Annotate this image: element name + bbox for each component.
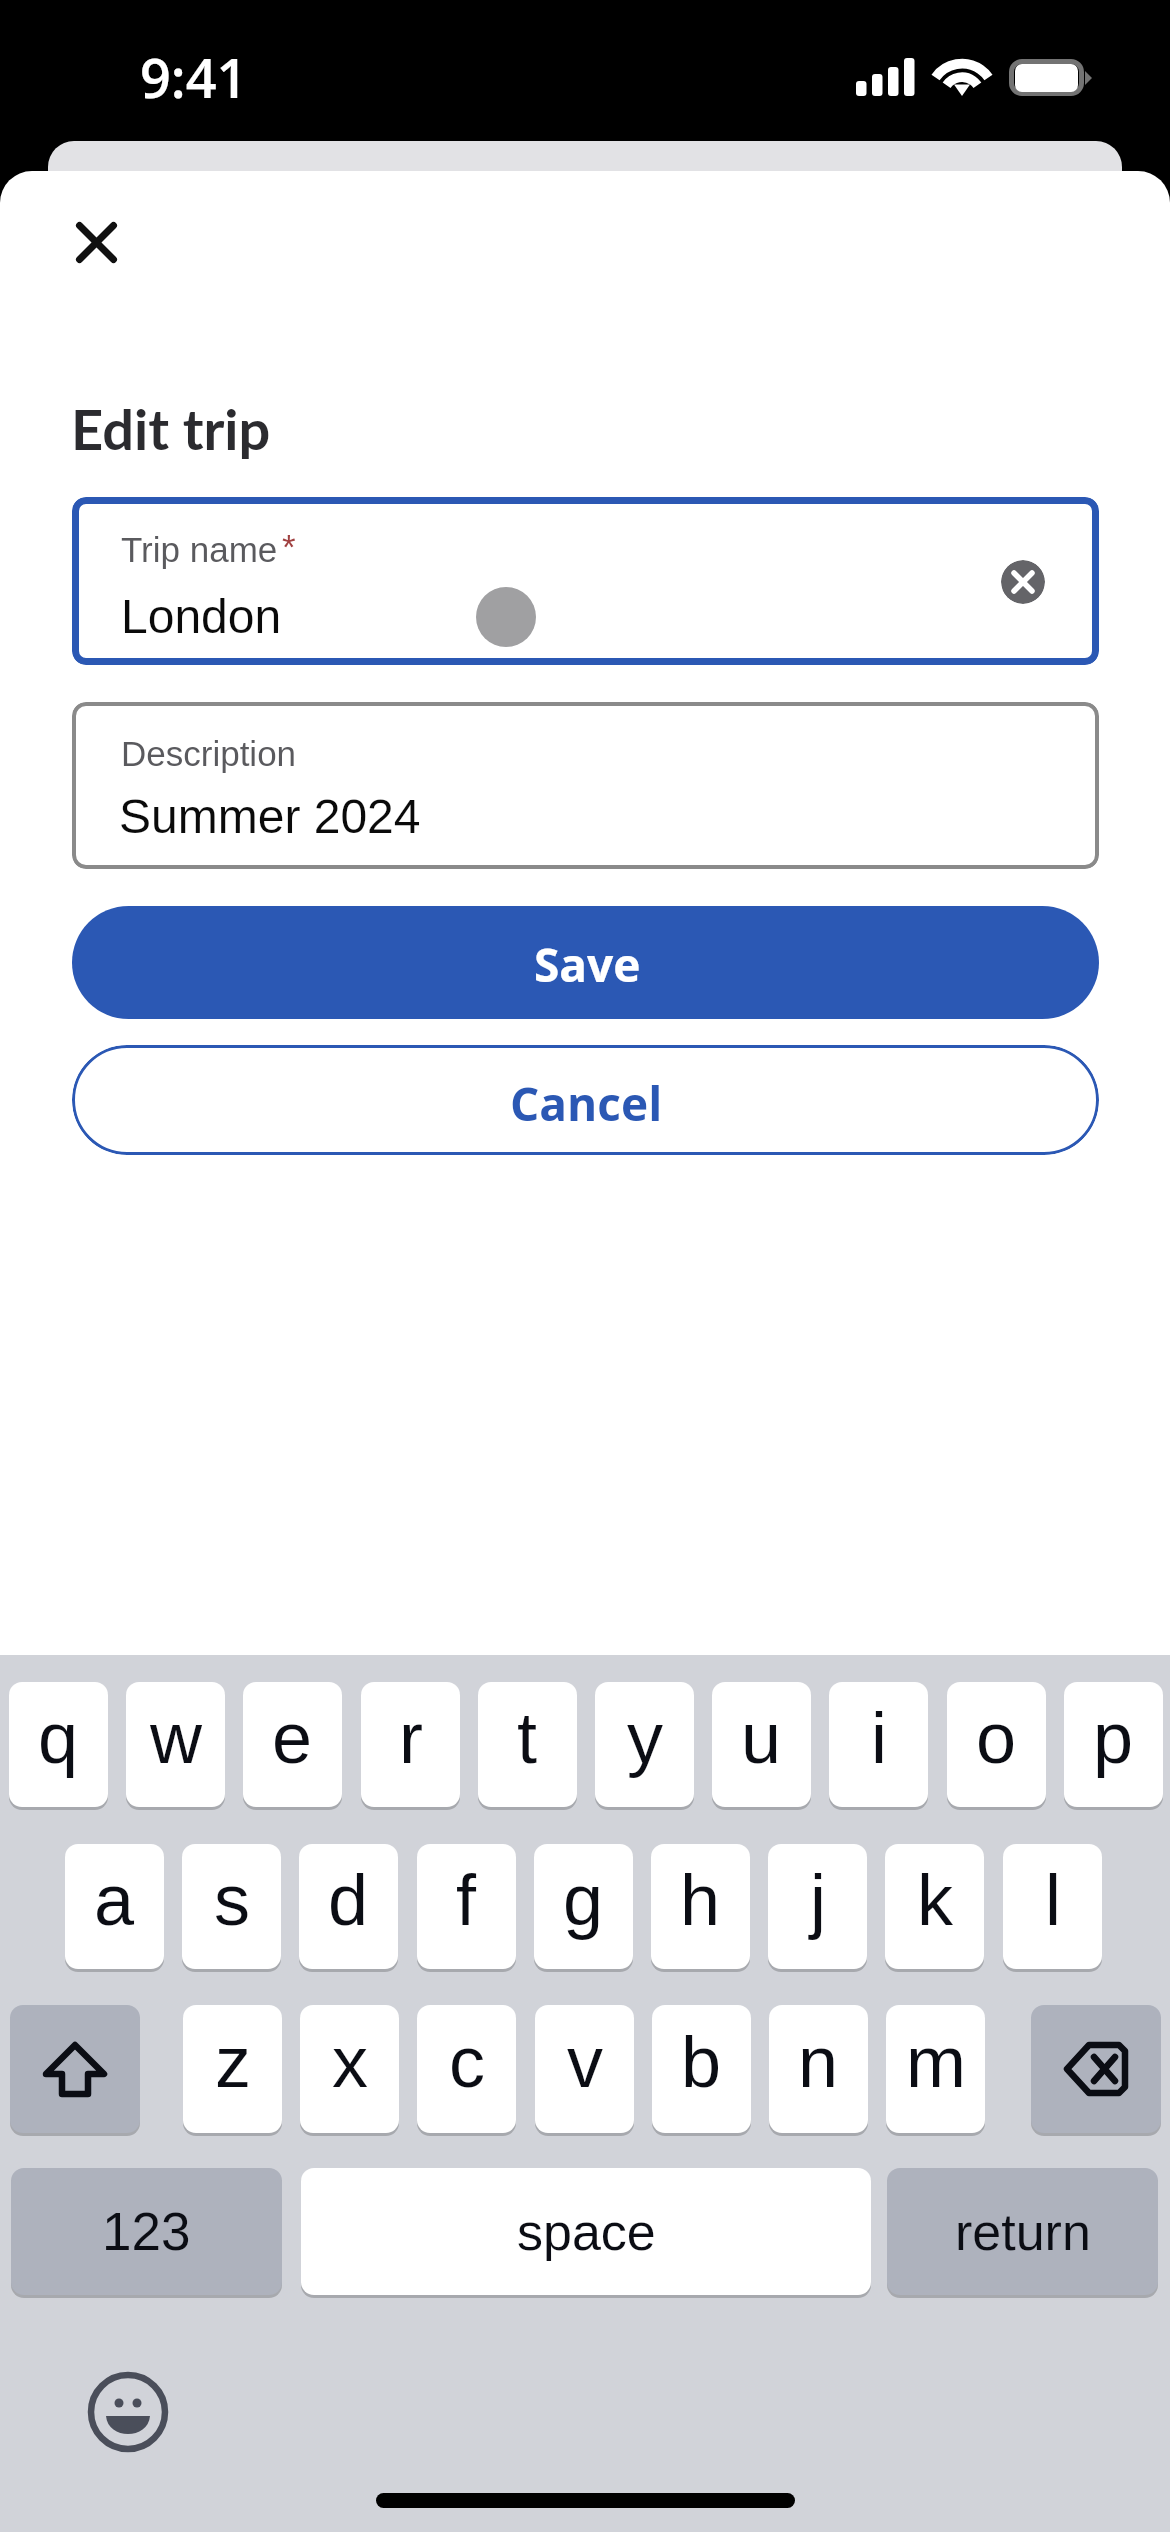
staticText: Trip name (121, 530, 278, 569)
staticText: u (741, 1698, 782, 1778)
staticText: x (332, 2022, 368, 2102)
button[interactable]: n (769, 2005, 868, 2133)
button[interactable]: q (9, 1682, 108, 1807)
staticText: c (449, 2022, 485, 2102)
button[interactable]: c (417, 2005, 516, 2133)
staticText: a (94, 1860, 135, 1940)
button[interactable]: i (829, 1682, 928, 1807)
staticText: b (681, 2022, 722, 2102)
button[interactable]: Backspace (1031, 2005, 1161, 2133)
staticText: d (328, 1860, 369, 1940)
button[interactable]: g (534, 1844, 633, 1969)
button[interactable]: h (651, 1844, 750, 1969)
button[interactable]: k (885, 1844, 984, 1969)
staticText: g (563, 1860, 604, 1940)
button[interactable]: Cancel (72, 1045, 1099, 1155)
staticText: i (871, 1698, 887, 1778)
staticText: 123 (102, 2202, 191, 2261)
staticText: f (456, 1860, 477, 1940)
button[interactable]: s (182, 1844, 281, 1969)
button[interactable]: p (1064, 1682, 1163, 1807)
button[interactable]: Clear text (1001, 560, 1045, 604)
staticText: y (627, 1698, 663, 1778)
button[interactable]: v (535, 2005, 634, 2133)
button[interactable]: y (595, 1682, 694, 1807)
button[interactable]: u (712, 1682, 811, 1807)
staticText: 9:41 (140, 40, 248, 114)
button[interactable]: e (243, 1682, 342, 1807)
staticText: Cancel (510, 1072, 663, 1135)
button[interactable]: o (947, 1682, 1046, 1807)
staticText: e (272, 1698, 313, 1778)
button[interactable]: Close (56, 202, 136, 282)
staticText: l (1045, 1860, 1061, 1940)
staticText: v (567, 2022, 603, 2102)
button[interactable]: a (65, 1844, 164, 1969)
staticText: s (214, 1860, 250, 1940)
staticText: Edit trip (71, 395, 271, 462)
staticText: m (906, 2022, 966, 2102)
button[interactable]: t (478, 1682, 577, 1807)
staticText: London (121, 590, 282, 644)
button[interactable]: j (768, 1844, 867, 1969)
button[interactable]: Trip name (72, 497, 1099, 665)
button[interactable]: d (299, 1844, 398, 1969)
button[interactable]: b (652, 2005, 751, 2133)
button[interactable]: space (301, 2168, 871, 2295)
button[interactable]: Shift (10, 2005, 140, 2133)
staticText: Summer 2024 (119, 790, 421, 844)
staticText: n (798, 2022, 839, 2102)
staticText: Save (534, 933, 641, 996)
button[interactable]: r (361, 1682, 460, 1807)
staticText: p (1093, 1698, 1134, 1778)
staticText: o (976, 1698, 1017, 1778)
staticText: q (38, 1698, 79, 1778)
staticText: j (810, 1860, 826, 1940)
button[interactable]: z (183, 2005, 282, 2133)
button[interactable]: 123 (11, 2168, 282, 2295)
button[interactable]: return (887, 2168, 1158, 2295)
staticText: h (680, 1860, 721, 1940)
staticText: r (399, 1698, 423, 1778)
button[interactable]: x (300, 2005, 399, 2133)
staticText: Description (121, 734, 297, 773)
button[interactable]: l (1003, 1844, 1102, 1969)
button[interactable]: m (886, 2005, 985, 2133)
staticText: space (517, 2203, 656, 2261)
staticText: return (955, 2203, 1091, 2261)
staticText: z (215, 2022, 251, 2102)
button[interactable]: Save (72, 906, 1099, 1019)
button[interactable]: Emoji (88, 2372, 168, 2452)
staticText: k (917, 1860, 953, 1940)
staticText: t (517, 1698, 538, 1778)
button[interactable]: f (417, 1844, 516, 1969)
staticText: w (150, 1698, 202, 1778)
button[interactable]: w (126, 1682, 225, 1807)
staticText: * (282, 527, 296, 566)
button[interactable]: Description (72, 702, 1099, 869)
